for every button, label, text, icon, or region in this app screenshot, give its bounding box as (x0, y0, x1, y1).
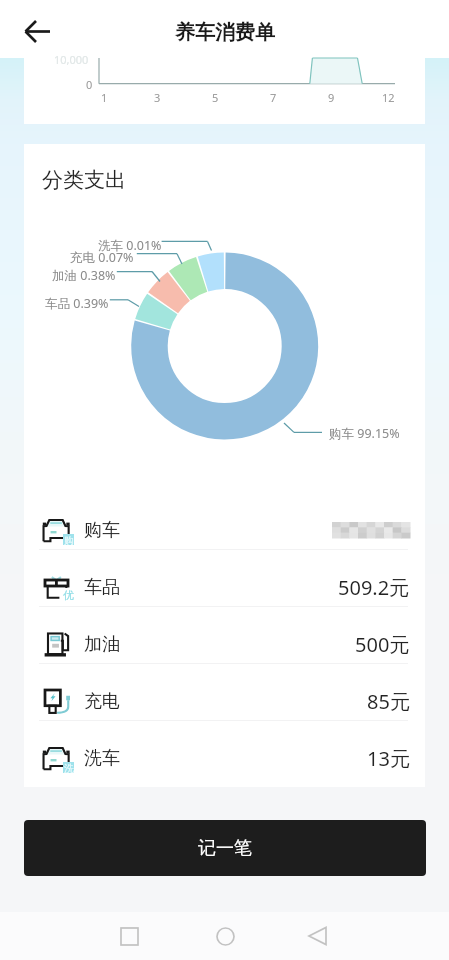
staticText: 加油 (84, 633, 120, 656)
staticText: 12 (382, 90, 395, 105)
button[interactable]: 购 (43, 512, 410, 549)
staticText: 500元 (355, 631, 410, 658)
button[interactable]: Recent apps (107, 914, 151, 958)
staticText: 购 (64, 534, 74, 545)
staticText: 加油 0.38% (52, 267, 116, 284)
button[interactable]: Back (295, 914, 339, 958)
button[interactable]: Back (14, 11, 60, 51)
staticText: 10,000 (54, 52, 89, 67)
button[interactable]: 洗 (43, 740, 410, 777)
staticText: 85元 (367, 688, 410, 715)
staticText: 13元 (367, 745, 410, 772)
staticText: 购车 (84, 519, 120, 542)
staticText: 0 (86, 77, 93, 92)
staticText: 509.2元 (338, 574, 410, 601)
button[interactable]: 加油 (43, 626, 410, 663)
staticText: 1 (101, 90, 108, 105)
staticText: 购车 99.15% (329, 425, 400, 442)
button[interactable]: 优 (43, 569, 410, 606)
staticText: 车品 (84, 576, 120, 599)
button[interactable]: 记一笔 (24, 820, 426, 876)
staticText: 优 (63, 588, 74, 602)
staticText: 洗车 0.01% (98, 237, 162, 254)
staticText: 洗车 (84, 747, 120, 770)
button[interactable]: Home (203, 914, 247, 958)
staticText: 7 (270, 90, 277, 105)
button[interactable]: 充电 (43, 683, 410, 720)
staticText: 充电 0.07% (70, 249, 134, 266)
staticText: 车品 0.39% (45, 295, 109, 312)
staticText: 充电 (84, 690, 120, 713)
staticText: 养车消费单 (175, 20, 275, 45)
staticText: 记一笔 (198, 837, 252, 860)
staticText: 3 (154, 90, 161, 105)
staticText: 分类支出 (42, 167, 126, 193)
staticText: 5 (212, 90, 219, 105)
staticText: 9 (328, 90, 335, 105)
staticText: 洗 (64, 762, 74, 773)
